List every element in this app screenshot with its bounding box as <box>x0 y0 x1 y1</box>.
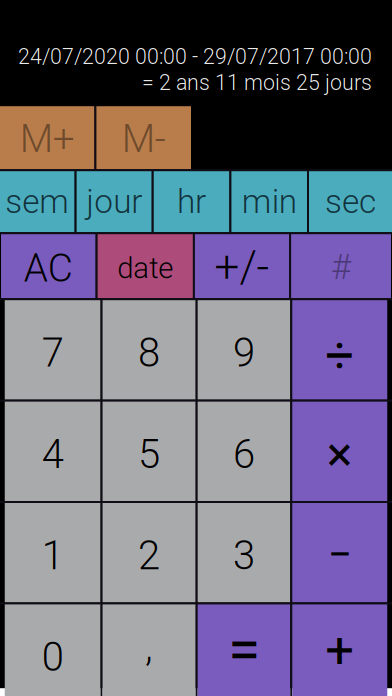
staticText: date <box>117 251 173 285</box>
button[interactable]: × <box>292 402 387 501</box>
button[interactable]: sem <box>0 171 75 232</box>
button[interactable]: 2 <box>102 503 196 602</box>
staticText: 1 <box>42 532 64 579</box>
staticText: , <box>145 624 153 671</box>
button[interactable]: = <box>198 604 290 696</box>
staticText: # <box>331 247 351 287</box>
staticText: sec <box>325 182 376 221</box>
button[interactable]: # <box>291 234 391 298</box>
button[interactable]: 0 <box>5 604 101 696</box>
button[interactable]: M+ <box>0 106 94 169</box>
button[interactable]: ÷ <box>292 300 387 400</box>
button[interactable]: 4 <box>5 402 101 501</box>
staticText: sem <box>5 182 69 221</box>
staticText: M+ <box>20 116 75 161</box>
staticText: AC <box>24 245 73 291</box>
button[interactable]: min <box>231 171 307 232</box>
staticText: = 2 ans 11 mois 25 jours <box>142 70 372 95</box>
staticText: 0 <box>42 634 64 681</box>
button[interactable]: sec <box>309 171 392 232</box>
staticText: jour <box>86 182 142 221</box>
staticText: M- <box>122 116 166 161</box>
button[interactable]: 6 <box>198 402 290 501</box>
button[interactable]: 1 <box>5 503 101 602</box>
staticText: 8 <box>138 329 160 376</box>
staticText: 9 <box>233 329 255 376</box>
button[interactable]: , <box>102 604 196 696</box>
button[interactable]: 5 <box>102 402 196 501</box>
staticText: 6 <box>233 431 255 478</box>
staticText: 4 <box>42 431 64 478</box>
staticText: 7 <box>42 329 64 376</box>
staticText: 24/07/2020 00:00 - 29/07/2017 00:00 <box>18 44 372 69</box>
button[interactable]: AC <box>1 234 96 298</box>
button[interactable]: hr <box>154 171 229 232</box>
staticText: +/- <box>214 241 269 293</box>
button[interactable]: 8 <box>102 300 196 400</box>
button[interactable]: + <box>292 604 387 696</box>
button[interactable]: 9 <box>198 300 290 400</box>
button[interactable]: 3 <box>198 503 290 602</box>
staticText: × <box>327 426 353 482</box>
staticText: 2 <box>138 532 160 579</box>
staticText: ÷ <box>325 325 354 385</box>
button[interactable]: jour <box>77 171 152 232</box>
button[interactable]: − <box>292 503 387 602</box>
button[interactable]: 7 <box>5 300 101 400</box>
staticText: + <box>325 620 354 680</box>
staticText: 3 <box>233 532 255 579</box>
staticText: 5 <box>138 431 160 478</box>
staticText: − <box>328 530 352 580</box>
button[interactable]: M- <box>96 106 191 169</box>
staticText: hr <box>177 182 206 221</box>
button[interactable]: +/- <box>195 234 289 298</box>
staticText: min <box>242 182 297 221</box>
button[interactable]: date <box>98 234 193 298</box>
staticText: = <box>228 616 260 684</box>
